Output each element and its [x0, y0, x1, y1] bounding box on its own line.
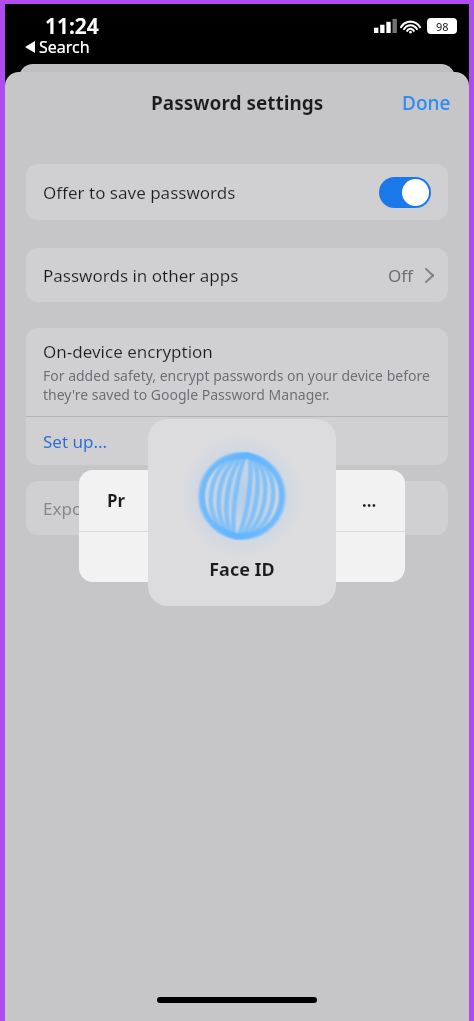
- button[interactable]: Passwords in other apps: [26, 248, 448, 302]
- staticText: Off: [388, 264, 413, 287]
- staticText: Offer to save passwords: [43, 181, 379, 204]
- staticText: Search: [39, 36, 90, 58]
- staticText: Export pass...: [43, 497, 150, 520]
- staticText: Set up...: [43, 430, 108, 453]
- other: Face ID authentication: [148, 419, 336, 606]
- button[interactable]: Done: [384, 80, 469, 126]
- staticText: 11:24: [45, 12, 99, 41]
- staticText: 98: [436, 19, 449, 34]
- staticText: Pr: [107, 489, 126, 512]
- staticText: For added safety, encrypt passwords on y…: [43, 366, 431, 404]
- staticText: ...: [362, 489, 377, 512]
- staticText: Password settings: [151, 90, 324, 116]
- staticText: On-device encryption: [43, 340, 213, 363]
- button[interactable]: Set up...: [26, 417, 448, 465]
- staticText: Face ID: [209, 557, 275, 582]
- button[interactable]: Export pass...: [26, 481, 448, 535]
- button[interactable]: Offer to save passwords: [26, 164, 448, 220]
- staticText: Done: [402, 90, 451, 116]
- staticText: Passwords in other apps: [43, 264, 388, 287]
